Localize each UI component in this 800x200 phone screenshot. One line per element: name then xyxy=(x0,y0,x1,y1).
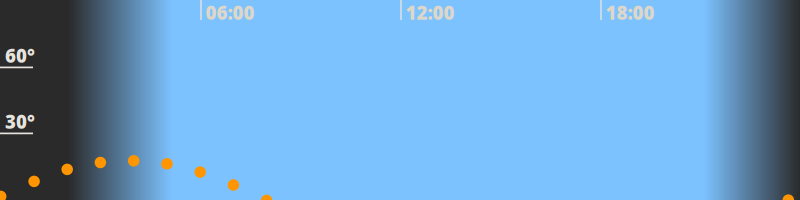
staticText: 06:00 xyxy=(205,0,254,25)
staticText: 60° xyxy=(5,43,35,68)
staticText: 12:00 xyxy=(405,0,454,25)
staticText: 18:00 xyxy=(605,0,654,25)
button[interactable]: Sun position chart xyxy=(0,0,800,200)
staticText: 30° xyxy=(5,109,35,134)
